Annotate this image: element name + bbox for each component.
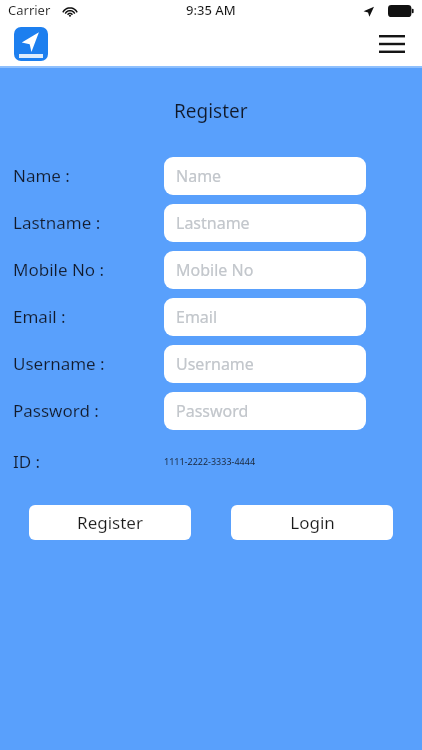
- button[interactable]: Lastname: [164, 204, 366, 242]
- staticText: Register: [174, 98, 248, 124]
- button[interactable]: Login: [231, 505, 393, 540]
- staticText: Password: [176, 400, 249, 422]
- staticText: ID :: [13, 450, 41, 473]
- staticText: Email: [176, 306, 218, 328]
- staticText: Email :: [13, 305, 66, 328]
- staticText: Register: [77, 511, 143, 534]
- staticText: Lastname: [176, 212, 250, 234]
- staticText: 9:35 AM: [186, 1, 236, 19]
- button[interactable]: Menu: [372, 24, 412, 64]
- button[interactable]: Password: [164, 392, 366, 430]
- staticText: Username: [176, 353, 254, 375]
- staticText: Name: [176, 165, 222, 187]
- button[interactable]: Mobile No: [164, 251, 366, 289]
- button[interactable]: App logo: [14, 27, 48, 61]
- staticText: Lastname :: [13, 211, 101, 234]
- button[interactable]: Username: [164, 345, 366, 383]
- staticText: Carrier: [8, 1, 51, 19]
- staticText: Username :: [13, 352, 105, 375]
- staticText: Mobile No :: [13, 258, 105, 281]
- button[interactable]: Email: [164, 298, 366, 336]
- staticText: 1111-2222-3333-4444: [164, 455, 256, 467]
- button[interactable]: Name: [164, 157, 366, 195]
- button[interactable]: Register: [29, 505, 191, 540]
- staticText: Name :: [13, 164, 70, 187]
- staticText: Login: [290, 511, 335, 534]
- staticText: Mobile No: [176, 259, 254, 281]
- staticText: Password :: [13, 399, 99, 422]
